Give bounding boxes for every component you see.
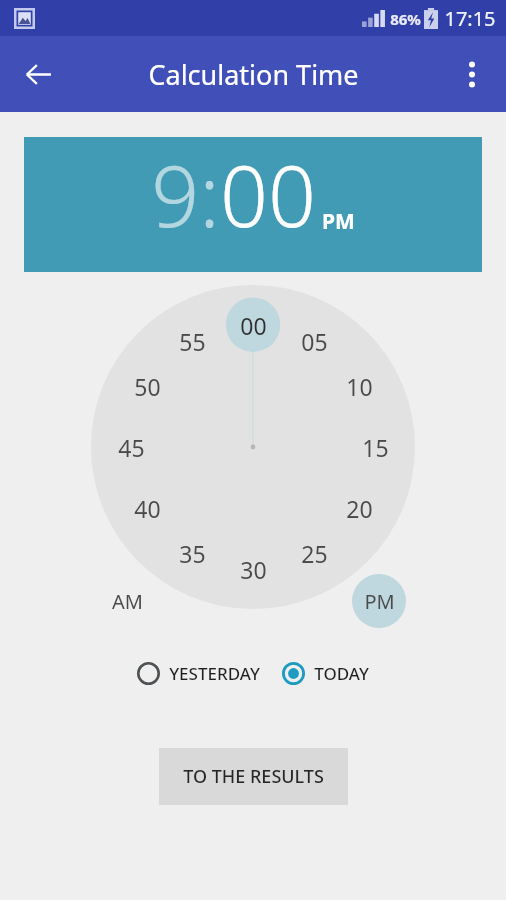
- staticText: 00: [220, 137, 316, 246]
- staticText: 50: [134, 371, 161, 402]
- button[interactable]: TO THE RESULTS: [159, 748, 348, 805]
- staticText: 45: [118, 432, 145, 463]
- button[interactable]: YESTERDAY: [135, 657, 262, 690]
- button[interactable]: Back: [14, 50, 62, 98]
- staticText: TODAY: [314, 662, 369, 685]
- button[interactable]: 9:: [24, 137, 482, 272]
- button[interactable]: TODAY: [280, 657, 371, 690]
- staticText: AM: [112, 588, 143, 615]
- staticText: 05: [301, 326, 328, 357]
- staticText: PM: [322, 207, 355, 236]
- staticText: 55: [179, 326, 206, 357]
- button[interactable]: More options: [448, 50, 496, 98]
- staticText: 30: [240, 554, 267, 585]
- staticText: 40: [134, 493, 161, 524]
- button[interactable]: Minute picker: [0, 285, 506, 635]
- button[interactable]: AM: [103, 577, 151, 625]
- staticText: 35: [179, 538, 206, 569]
- staticText: 10: [346, 371, 373, 402]
- staticText: 00: [240, 310, 267, 341]
- staticText: 17:15: [444, 5, 496, 32]
- staticText: 86%: [390, 9, 421, 29]
- staticText: PM: [364, 588, 395, 615]
- staticText: 20: [346, 493, 373, 524]
- button[interactable]: PM: [352, 574, 406, 628]
- staticText: TO THE RESULTS: [183, 764, 324, 789]
- staticText: YESTERDAY: [169, 662, 260, 685]
- staticText: 25: [301, 538, 328, 569]
- staticText: 15: [362, 432, 389, 463]
- staticText: 9:: [151, 137, 220, 246]
- staticText: Calculation Time: [148, 56, 359, 93]
